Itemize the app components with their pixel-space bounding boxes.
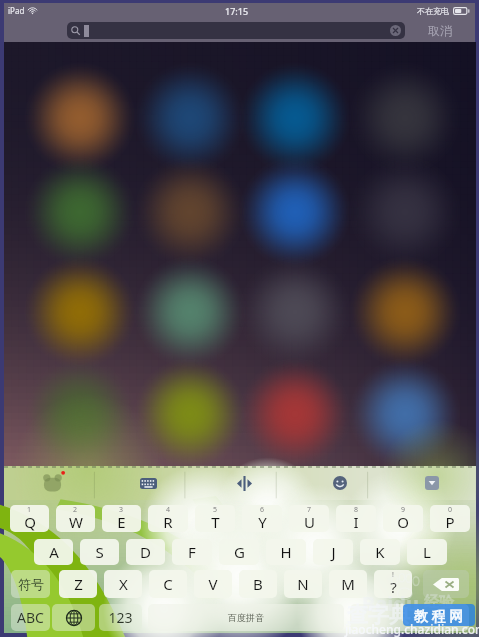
staticText: W — [69, 512, 83, 532]
button[interactable]: S — [80, 539, 119, 565]
button[interactable]: F — [172, 539, 212, 565]
button[interactable]: Clear search — [67, 22, 405, 39]
button[interactable]: 取消 — [405, 18, 475, 42]
button[interactable]: K — [360, 539, 400, 565]
staticText: 1 — [27, 505, 32, 515]
button[interactable]: 123 — [99, 604, 142, 631]
button[interactable]: 5 — [195, 505, 235, 532]
button[interactable]: Clear search — [390, 25, 401, 36]
button[interactable]: Backspace — [423, 570, 469, 598]
button[interactable]: 7 — [289, 505, 329, 532]
button[interactable]: 6 — [242, 505, 282, 532]
staticText: 4 — [166, 505, 171, 515]
button[interactable]: Z — [59, 570, 97, 598]
button[interactable]: N — [284, 570, 322, 598]
staticText: C — [163, 574, 173, 594]
staticText: G — [234, 542, 245, 562]
staticText: 取消 — [428, 23, 452, 38]
staticText: M — [341, 574, 355, 594]
staticText: Q — [24, 512, 36, 532]
staticText: 查字典 — [347, 602, 410, 628]
staticText: N — [297, 574, 309, 594]
staticText: X — [119, 574, 128, 594]
staticText: 2 — [73, 505, 78, 515]
button[interactable]: 1 — [10, 505, 49, 532]
button[interactable]: Baidu IME — [4, 466, 100, 500]
staticText: 8 — [354, 505, 359, 515]
button[interactable]: 百度拼音 — [148, 604, 344, 631]
button[interactable]: Emoji — [292, 466, 388, 500]
staticText: 经验 — [424, 593, 454, 612]
button[interactable]: 符号 — [11, 570, 50, 598]
staticText: T — [211, 512, 220, 532]
staticText: ! — [392, 570, 394, 580]
staticText: R — [163, 512, 173, 532]
staticText: iPad — [8, 5, 25, 16]
staticText: ABC — [17, 608, 44, 627]
button[interactable]: Hide keyboard — [388, 466, 475, 500]
button[interactable]: L — [407, 539, 447, 565]
button[interactable]: H — [266, 539, 306, 565]
staticText: jiaocheng.chazidian.com — [345, 621, 479, 637]
button[interactable]: 4 — [148, 505, 188, 532]
staticText: V — [208, 574, 218, 594]
button[interactable]: J — [313, 539, 353, 565]
button[interactable]: Keyboard settings — [100, 466, 196, 500]
button[interactable]: Switch language — [52, 604, 95, 631]
staticText: A — [49, 542, 59, 562]
staticText: 3 — [119, 505, 124, 515]
button[interactable]: C — [149, 570, 187, 598]
staticText: U — [304, 512, 315, 532]
button[interactable]: V — [194, 570, 232, 598]
staticText: 百度拼音 — [228, 612, 264, 623]
staticText: 符号 — [18, 576, 44, 592]
staticText: Y — [258, 512, 267, 532]
staticText: 教 程 网 — [414, 606, 464, 625]
staticText: S — [95, 542, 104, 562]
staticText: D — [140, 542, 151, 562]
staticText: I — [353, 512, 359, 532]
button[interactable]: 0 — [430, 505, 470, 532]
staticText: P — [445, 512, 455, 532]
button[interactable]: G — [219, 539, 259, 565]
button[interactable]: 2 — [56, 505, 95, 532]
button[interactable]: D — [126, 539, 165, 565]
staticText: 0 — [448, 505, 453, 515]
button[interactable]: ABC — [11, 604, 50, 631]
staticText: 7 — [307, 505, 312, 515]
staticText: 5 — [213, 505, 218, 515]
button[interactable]: B — [239, 570, 277, 598]
button[interactable]: ! — [374, 570, 412, 598]
staticText: Baidu — [362, 590, 419, 617]
staticText: J — [331, 542, 336, 562]
staticText: 不在充电 — [417, 6, 449, 16]
button[interactable]: 9 — [383, 505, 423, 532]
staticText: O — [397, 512, 409, 532]
staticText: 6 — [260, 505, 265, 515]
button[interactable]: X — [104, 570, 142, 598]
staticText: 17:15 — [225, 5, 249, 17]
button[interactable]: M — [329, 570, 367, 598]
button[interactable]: 8 — [336, 505, 376, 532]
staticText: 123 — [108, 608, 133, 627]
staticText: L — [423, 542, 431, 562]
staticText: K — [375, 542, 385, 562]
staticText: E — [117, 512, 126, 532]
staticText: Z — [74, 574, 83, 594]
staticText: F — [188, 542, 196, 562]
button[interactable]: 3 — [102, 505, 141, 532]
button[interactable]: Resize keyboard — [196, 466, 292, 500]
staticText: 9 — [401, 505, 406, 515]
button[interactable] — [350, 604, 469, 631]
staticText: B — [253, 574, 263, 594]
staticText: H — [280, 542, 292, 562]
button[interactable]: A — [34, 539, 73, 565]
staticText: ? — [390, 577, 397, 597]
